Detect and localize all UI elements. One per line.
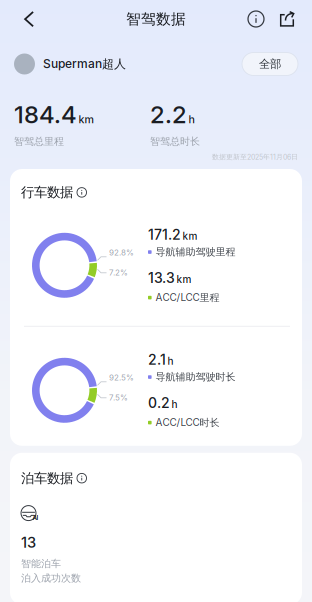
staticText: ACC/LCC时长 [156, 416, 220, 429]
staticText: 泊车数据 [21, 470, 73, 487]
staticText: km [176, 273, 191, 285]
staticText: h [188, 113, 194, 126]
staticText: 2.2 [150, 100, 187, 129]
staticText: 导航辅助驾驶时长 [156, 371, 236, 383]
staticText: ACC/LCC里程 [156, 291, 220, 304]
staticText: km [78, 113, 93, 126]
staticText: 13 [21, 534, 36, 551]
staticText: 2.1 [148, 351, 166, 368]
staticText: 智驾总里程 [14, 135, 64, 148]
staticText: km [182, 230, 197, 242]
staticText: 184.4 [14, 100, 77, 129]
staticText: 泊入成功次数 [21, 572, 81, 584]
staticText: 0.2 [148, 394, 170, 411]
staticText: 行车数据 [21, 184, 73, 201]
staticText: 智驾总时长 [150, 135, 200, 148]
staticText: 13.3 [148, 269, 175, 286]
button[interactable]: 全部 [242, 52, 298, 75]
staticText: 7.5% [109, 393, 128, 402]
staticText: 智能泊车 [21, 557, 61, 570]
staticText: h [167, 355, 173, 367]
staticText: 智驾数据 [126, 10, 186, 28]
staticText: 92.8% [109, 248, 134, 257]
staticText: Superman超人 [43, 56, 126, 72]
staticText: 7.2% [109, 268, 128, 277]
staticText: 171.2 [148, 226, 181, 243]
button[interactable]: Back [10, 0, 48, 38]
staticText: 92.5% [109, 373, 134, 382]
staticText: AI [32, 514, 38, 521]
staticText: 全部 [259, 57, 281, 71]
button[interactable]: Share [272, 0, 302, 38]
staticText: h [171, 398, 177, 410]
button[interactable]: Info [240, 0, 272, 38]
staticText: 导航辅助驾驶里程 [156, 246, 236, 258]
staticText: 数据更新至2025年11月06日 [212, 153, 298, 161]
